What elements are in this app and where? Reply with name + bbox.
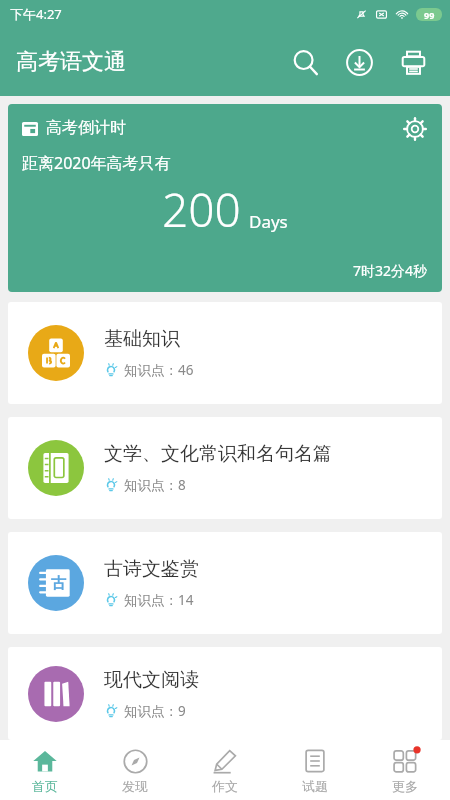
button[interactable]: 试题 [270, 740, 360, 800]
staticText: 古 [51, 574, 66, 593]
staticText: 下午4:27 [10, 5, 62, 23]
staticText: 文学、文化常识和名句名篇 [104, 442, 332, 466]
staticText: 99 [424, 9, 435, 21]
staticText: 知识点：14 [124, 591, 194, 609]
button[interactable]: 更多 [360, 740, 450, 800]
button[interactable]: 作文 [180, 740, 270, 800]
staticText: 试题 [302, 778, 328, 794]
staticText: 基础知识 [104, 327, 180, 351]
staticText: Days [249, 210, 288, 233]
staticText: 现代文阅读 [104, 668, 199, 692]
button[interactable]: 高考倒计时 [8, 104, 442, 292]
staticText: 发现 [122, 778, 148, 794]
button[interactable]: 发现 [90, 740, 180, 800]
button[interactable]: Settings [398, 112, 432, 146]
button[interactable]: 文学、文化常识和名句名篇 [8, 417, 442, 519]
staticText: 7时32分4秒 [353, 261, 428, 280]
button[interactable]: 基础知识 [8, 302, 442, 404]
staticText: 知识点：8 [124, 476, 186, 494]
button[interactable]: 现代文阅读 [8, 647, 442, 740]
button[interactable]: Search [278, 35, 332, 89]
staticText: 200 [162, 178, 241, 241]
staticText: 知识点：46 [124, 361, 194, 379]
staticText: 高考倒计时 [46, 118, 126, 138]
staticText: 距离2020年高考只有 [22, 152, 171, 174]
button[interactable]: Print [386, 35, 440, 89]
button[interactable]: 古 [8, 532, 442, 634]
staticText: 古诗文鉴赏 [104, 557, 199, 581]
staticText: 更多 [392, 778, 418, 794]
staticText: 知识点：9 [124, 702, 186, 720]
staticText: 作文 [212, 778, 238, 794]
staticText: 首页 [32, 778, 58, 794]
button[interactable]: 首页 [0, 740, 90, 800]
button[interactable]: Download [332, 35, 386, 89]
staticText: 高考语文通 [16, 48, 126, 76]
